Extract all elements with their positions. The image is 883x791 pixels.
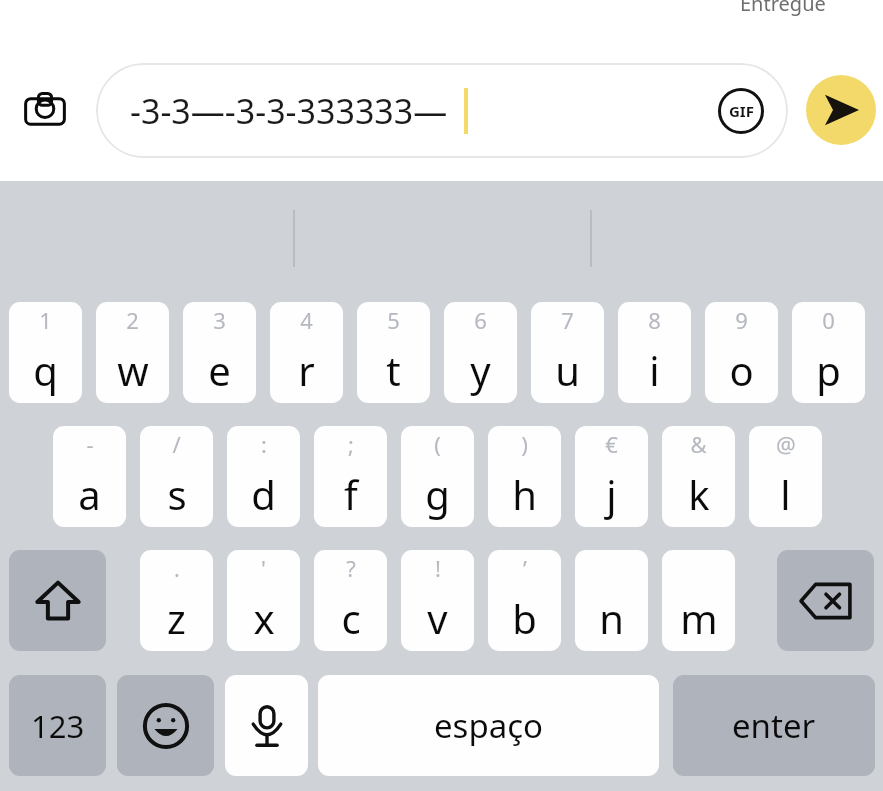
staticText: GIF — [729, 101, 754, 121]
staticText: f — [344, 467, 358, 521]
button[interactable]: & — [662, 426, 735, 527]
staticText: 7 — [561, 305, 574, 335]
staticText: enter — [732, 703, 816, 748]
button[interactable]: espaço — [318, 675, 659, 776]
button[interactable]: ' — [227, 550, 300, 651]
button[interactable]: ) — [488, 426, 561, 527]
staticText: / — [172, 429, 181, 459]
button[interactable]: ’ — [488, 550, 561, 651]
staticText: ! — [435, 553, 441, 583]
staticText: 3 — [213, 305, 226, 335]
button[interactable]: 8 — [618, 302, 691, 403]
button[interactable]: ! — [401, 550, 474, 651]
button[interactable]: Voice input — [225, 675, 308, 776]
button[interactable]: @ — [749, 426, 822, 527]
staticText: h — [512, 467, 537, 521]
staticText: . — [174, 553, 180, 583]
button[interactable]: 1 — [9, 302, 82, 403]
staticText: ( — [434, 429, 441, 459]
button[interactable]: Camera — [14, 80, 76, 142]
button[interactable]: / — [140, 426, 213, 527]
staticText: € — [605, 429, 618, 459]
staticText: - — [86, 429, 94, 459]
staticText: j — [606, 467, 617, 521]
staticText: i — [649, 343, 660, 397]
staticText: 1 — [39, 305, 52, 335]
staticText: g — [425, 467, 450, 521]
button[interactable]: ? — [314, 550, 387, 651]
button[interactable]: 2 — [96, 302, 169, 403]
button[interactable]: - — [53, 426, 126, 527]
button[interactable]: : — [227, 426, 300, 527]
button[interactable]: 6 — [444, 302, 517, 403]
staticText: x — [253, 591, 275, 645]
button[interactable]: -3-3—-3-3-333333— — [96, 63, 788, 158]
button[interactable]: Backspace — [777, 550, 874, 651]
staticText: : — [261, 429, 267, 459]
staticText: t — [386, 343, 401, 397]
staticText: 2 — [126, 305, 139, 335]
staticText: -3-3—-3-3-333333— — [130, 88, 448, 134]
staticText: d — [251, 467, 276, 521]
staticText: 123 — [31, 705, 85, 747]
button[interactable]: ; — [314, 426, 387, 527]
staticText: ; — [348, 429, 354, 459]
staticText: ’ — [523, 553, 527, 583]
button[interactable]: 3 — [183, 302, 256, 403]
staticText: espaço — [434, 703, 544, 748]
staticText: 8 — [648, 305, 661, 335]
staticText: ? — [346, 553, 356, 583]
button[interactable]: ( — [401, 426, 474, 527]
button[interactable]: Shift — [9, 550, 106, 651]
staticText: q — [33, 343, 58, 397]
staticText: o — [729, 343, 754, 397]
staticText: w — [117, 343, 149, 397]
staticText: 4 — [300, 305, 313, 335]
staticText: z — [167, 591, 186, 645]
button[interactable]: 4 — [270, 302, 343, 403]
staticText: ) — [521, 429, 528, 459]
button[interactable]: . — [140, 550, 213, 651]
staticText: l — [780, 467, 791, 521]
button[interactable]: Send — [806, 75, 876, 145]
button[interactable]: m — [662, 550, 735, 651]
staticText: b — [512, 591, 537, 645]
staticText: 9 — [735, 305, 748, 335]
button[interactable]: 9 — [705, 302, 778, 403]
button[interactable]: 5 — [357, 302, 430, 403]
staticText: r — [298, 343, 315, 397]
staticText: u — [555, 343, 580, 397]
button[interactable]: GIF — [718, 88, 764, 134]
staticText: Entregue — [740, 0, 826, 17]
staticText: e — [208, 343, 231, 397]
staticText: k — [688, 467, 710, 521]
button[interactable]: 123 — [9, 675, 106, 776]
staticText: ' — [261, 553, 266, 583]
staticText: @ — [776, 429, 796, 459]
button[interactable]: € — [575, 426, 648, 527]
staticText: 5 — [387, 305, 400, 335]
staticText: c — [341, 591, 361, 645]
staticText: 6 — [474, 305, 487, 335]
staticText: n — [599, 591, 624, 645]
staticText: v — [427, 591, 448, 645]
staticText: a — [78, 467, 101, 521]
button[interactable]: Emoji — [117, 675, 214, 776]
staticText: y — [470, 343, 491, 397]
button[interactable]: enter — [673, 675, 875, 776]
button[interactable]: 0 — [792, 302, 865, 403]
staticText: & — [690, 429, 707, 459]
button[interactable]: n — [575, 550, 648, 651]
staticText: m — [680, 591, 718, 645]
staticText: s — [167, 467, 187, 521]
staticText: p — [816, 343, 841, 397]
button[interactable]: 7 — [531, 302, 604, 403]
staticText: 0 — [822, 305, 835, 335]
